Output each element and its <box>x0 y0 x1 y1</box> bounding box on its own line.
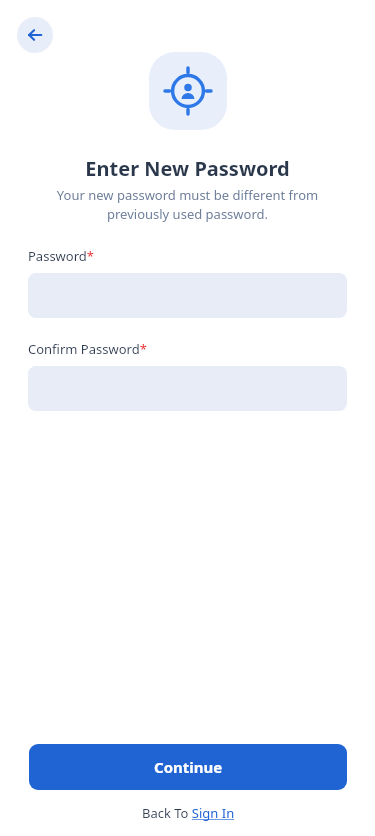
staticText: Confirm Password* <box>28 340 147 358</box>
staticText: Enter New Password <box>85 155 290 182</box>
staticText: Your new password must be different from… <box>38 186 337 223</box>
staticText: Back To Sign In <box>142 804 235 822</box>
staticText: Continue <box>154 757 223 777</box>
button[interactable]: Back <box>17 17 53 53</box>
button[interactable]: Back To Sign In <box>142 804 235 822</box>
staticText: Password* <box>28 247 94 265</box>
button[interactable]: Continue <box>29 744 347 790</box>
